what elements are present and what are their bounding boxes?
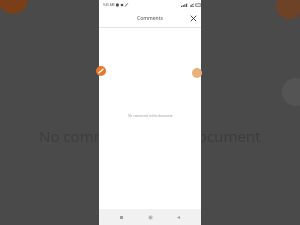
button[interactable]: Recents	[116, 212, 127, 223]
staticText: No comments in this document	[128, 114, 173, 118]
staticText: Comments	[137, 15, 164, 22]
button[interactable]: Back	[173, 212, 184, 223]
staticText: No comments in this document	[39, 126, 261, 146]
button[interactable]: Home	[145, 212, 156, 223]
button[interactable]: Close	[188, 13, 198, 23]
button[interactable]: Edit	[96, 66, 106, 76]
staticText: 9:45 AM	[103, 3, 115, 7]
